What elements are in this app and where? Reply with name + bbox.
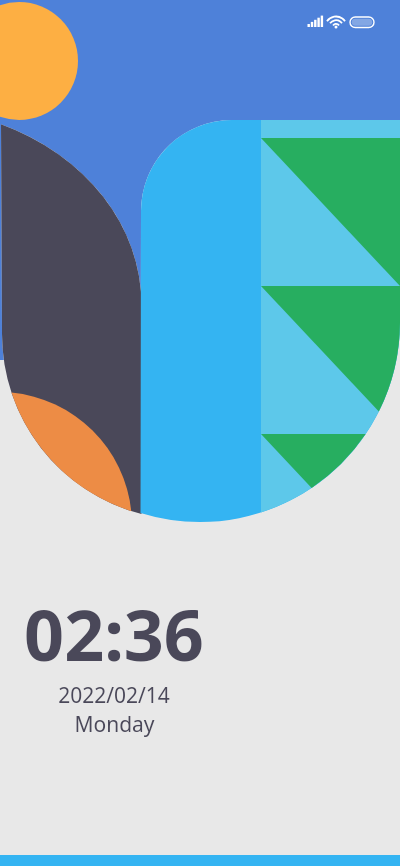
staticText: 2022/02/14: [58, 681, 170, 710]
staticText: Monday: [74, 710, 155, 739]
button[interactable]: 02:36: [0, 586, 228, 739]
staticText: 02:36: [24, 586, 204, 681]
